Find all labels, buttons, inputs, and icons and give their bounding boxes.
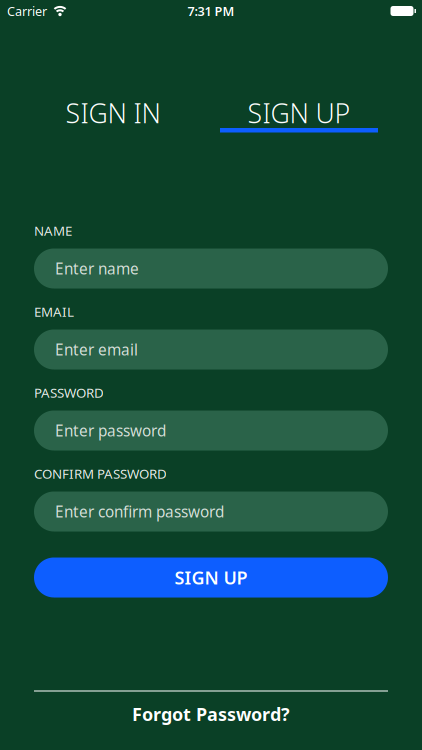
button[interactable]: SIGN IN [34,102,192,132]
staticText: Enter password [55,420,166,441]
button[interactable]: Enter confirm password [34,491,388,531]
staticText: SIGN UP [174,565,247,590]
staticText: SIGN UP [247,95,350,131]
button[interactable]: Enter name [34,248,388,288]
button[interactable]: Forgot Password? [132,703,290,725]
staticText: SIGN IN [65,95,160,131]
staticText: NAME [34,221,72,240]
button[interactable]: SIGN UP [34,557,388,597]
staticText: 7:31 PM [187,2,234,20]
staticText: Enter name [55,258,139,279]
staticText: Carrier [7,2,47,20]
staticText: Enter confirm password [55,501,224,522]
button[interactable]: Enter email [34,329,388,369]
staticText: PASSWORD [34,383,104,402]
staticText: CONFIRM PASSWORD [34,464,167,483]
staticText: Enter email [55,339,138,360]
button[interactable]: SIGN UP [220,102,378,132]
button[interactable]: Enter password [34,410,388,450]
staticText: Forgot Password? [132,702,290,726]
staticText: EMAIL [34,302,74,321]
